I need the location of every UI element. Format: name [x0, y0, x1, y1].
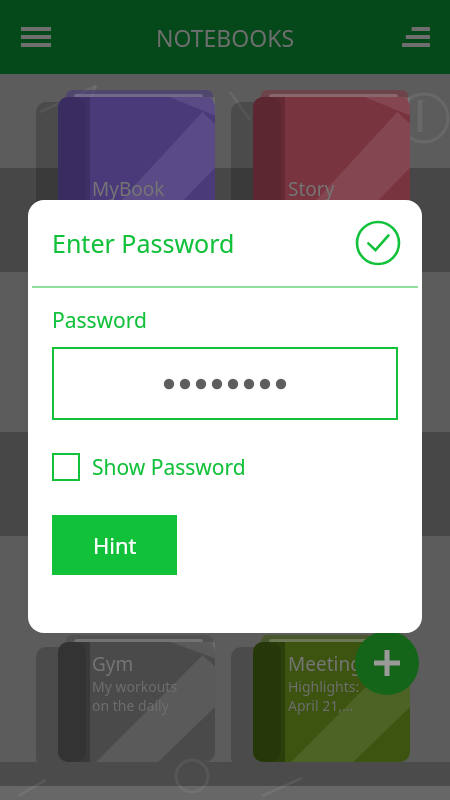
staticText: Enter Password: [52, 226, 352, 260]
staticText: Gym: [92, 651, 134, 677]
button[interactable]: Menu: [12, 13, 60, 61]
button[interactable]: [52, 347, 398, 420]
button[interactable]: Hint: [52, 515, 177, 575]
button[interactable]: Add notebook: [355, 631, 419, 695]
staticText: Story: [288, 176, 335, 202]
staticText: Show Password: [92, 453, 246, 482]
button[interactable]: Sort: [392, 13, 440, 61]
staticText: Meeting: [288, 651, 362, 677]
staticText: Highlights: April 21,…: [288, 677, 360, 715]
staticText: Password: [52, 306, 147, 335]
button[interactable]: Confirm: [352, 217, 404, 269]
button[interactable]: Show Password: [52, 450, 246, 484]
staticText: NOTEBOOKS: [156, 22, 295, 53]
staticText: MyBook: [92, 176, 165, 202]
staticText: My workouts on the daily: [92, 677, 178, 715]
staticText: Hint: [93, 530, 137, 560]
